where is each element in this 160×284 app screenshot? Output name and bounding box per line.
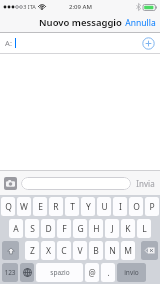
button[interactable]: Aggiungi contatto <box>142 37 155 50</box>
staticText: 3 ITA <box>23 3 36 10</box>
button[interactable]: invio <box>117 263 146 282</box>
button[interactable]: I <box>113 197 127 216</box>
button[interactable]: Cambia lingua <box>20 263 34 282</box>
button[interactable]: F <box>57 219 71 238</box>
staticText: V <box>77 245 83 257</box>
button[interactable]: W <box>17 197 31 216</box>
button[interactable]: spazio <box>36 263 83 282</box>
button[interactable]: Q <box>1 197 15 216</box>
staticText: T <box>70 201 75 213</box>
staticText: P <box>149 201 155 213</box>
staticText: G <box>77 223 84 235</box>
staticText: O <box>133 201 140 213</box>
staticText: K <box>125 223 131 235</box>
button[interactable]: 123 <box>2 263 18 282</box>
button[interactable]: X <box>41 241 55 260</box>
staticText: Invia <box>136 178 155 189</box>
button[interactable]: H <box>89 219 103 238</box>
staticText: E <box>38 201 43 213</box>
staticText: spazio <box>50 268 70 277</box>
button[interactable]: N <box>105 241 119 260</box>
staticText: W <box>20 201 28 213</box>
button[interactable]: D <box>41 219 55 238</box>
button[interactable]: O <box>129 197 143 216</box>
button[interactable]: Cancella <box>141 241 158 260</box>
staticText: Z <box>30 245 35 257</box>
staticText: I <box>119 201 122 213</box>
staticText: 123 <box>4 268 16 277</box>
button[interactable]: S <box>25 219 39 238</box>
button[interactable]: G <box>73 219 87 238</box>
staticText: F <box>62 223 67 235</box>
staticText: D <box>45 223 52 235</box>
staticText: A: <box>5 38 12 48</box>
staticText: U <box>101 201 108 213</box>
staticText: J <box>111 223 114 235</box>
staticText: A <box>13 223 19 235</box>
staticText: C <box>61 245 67 257</box>
staticText: invio <box>124 268 139 277</box>
button[interactable]: V <box>73 241 87 260</box>
button[interactable]: Invia <box>135 178 156 189</box>
button[interactable]: Z <box>25 241 39 260</box>
button[interactable]: B <box>89 241 103 260</box>
staticText: @ <box>88 267 96 278</box>
button[interactable]: J <box>105 219 119 238</box>
button[interactable]: Y <box>81 197 95 216</box>
button[interactable]: K <box>121 219 135 238</box>
staticText: Annulla <box>125 17 156 29</box>
staticText: H <box>93 223 100 235</box>
button[interactable]: Maiuscole <box>2 241 19 260</box>
button[interactable]: P <box>145 197 159 216</box>
button[interactable]: M <box>121 241 135 260</box>
staticText: S <box>30 223 35 235</box>
staticText: L <box>142 223 147 235</box>
staticText: . <box>107 267 110 278</box>
button[interactable] <box>21 177 131 190</box>
button[interactable]: E <box>33 197 47 216</box>
button[interactable]: L <box>137 219 151 238</box>
staticText: Nuovo messaggio <box>39 16 122 29</box>
staticText: 2:09 AM <box>69 3 92 11</box>
staticText: Q <box>5 201 12 213</box>
staticText: M <box>124 245 132 257</box>
button[interactable]: A <box>9 219 23 238</box>
staticText: N <box>109 245 116 257</box>
button[interactable]: Fotocamera <box>4 177 17 190</box>
button[interactable]: C <box>57 241 71 260</box>
button[interactable]: U <box>97 197 111 216</box>
staticText: R <box>53 201 59 213</box>
staticText: Y <box>86 201 91 213</box>
button[interactable]: @ <box>85 263 99 282</box>
button[interactable]: Annulla <box>121 13 160 32</box>
button[interactable]: . <box>101 263 115 282</box>
button[interactable]: R <box>49 197 63 216</box>
staticText: X <box>46 245 51 257</box>
button[interactable]: T <box>65 197 79 216</box>
staticText: B <box>93 245 99 257</box>
